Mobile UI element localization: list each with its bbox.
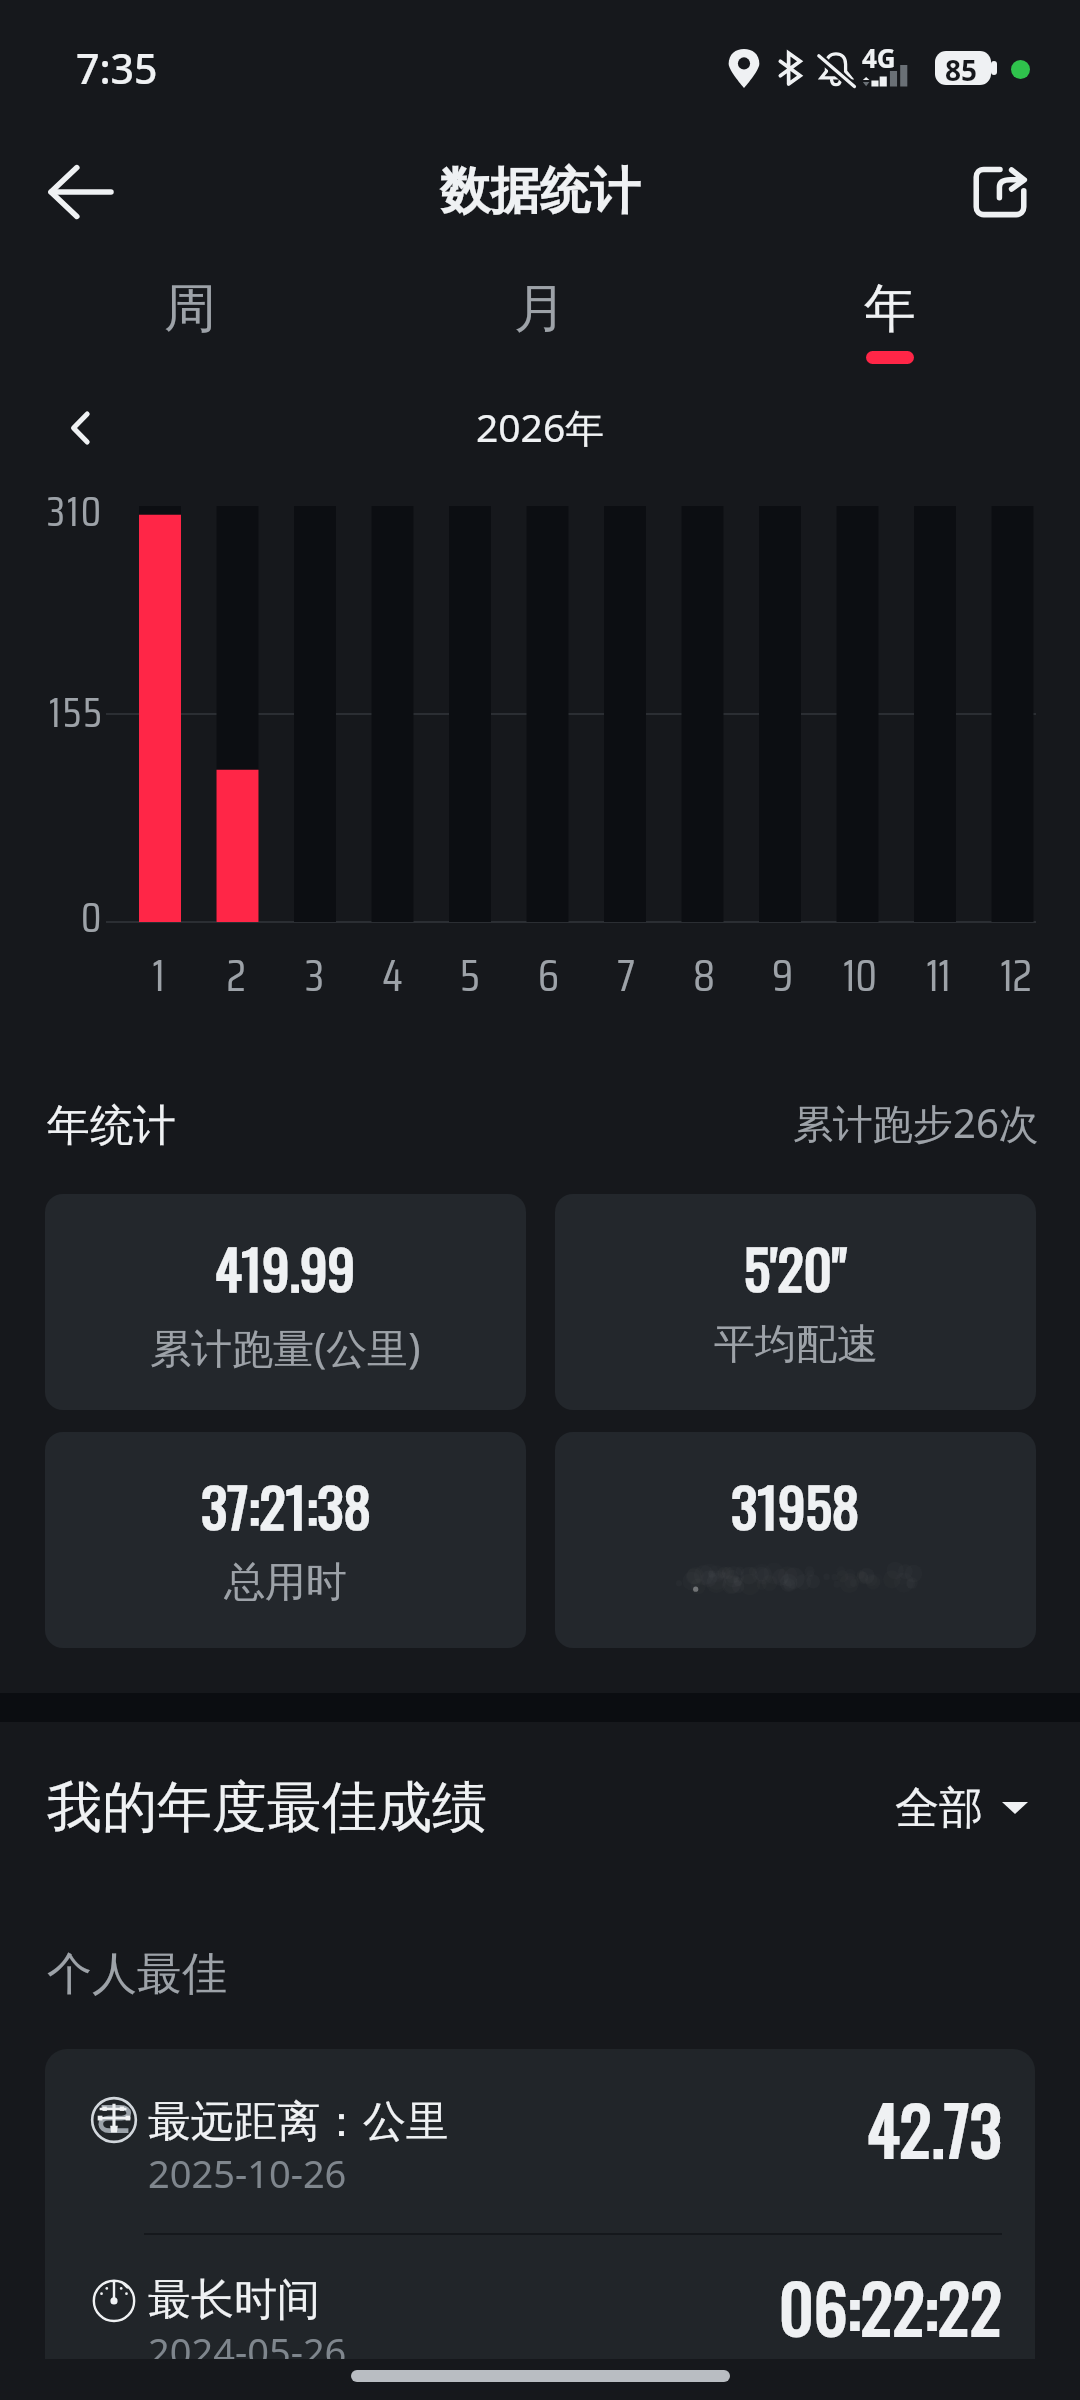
staticText: 0 bbox=[81, 884, 104, 950]
button[interactable]: 年 bbox=[774, 272, 1006, 382]
staticText: 11 bbox=[926, 941, 951, 1010]
staticText: 2 bbox=[226, 941, 246, 1010]
staticText: 5'20" bbox=[744, 1226, 847, 1308]
button[interactable]: 全部 bbox=[895, 1780, 1047, 1836]
staticText: 8 bbox=[693, 941, 715, 1010]
staticText: 31958 bbox=[731, 1464, 860, 1546]
staticText: 310 bbox=[47, 478, 104, 544]
staticText: 周 bbox=[164, 276, 216, 342]
staticText: 7 bbox=[617, 941, 635, 1010]
staticText: 月 bbox=[514, 276, 566, 342]
staticText: 37:21:38 bbox=[201, 1464, 371, 1546]
button[interactable]: 月 bbox=[424, 272, 656, 382]
button[interactable]: 最远距离：公里 bbox=[45, 2049, 1035, 2233]
staticText: 累计跑量(公里) bbox=[150, 1319, 421, 1375]
staticText: 5 bbox=[460, 941, 480, 1010]
staticText: 全部 bbox=[895, 1781, 983, 1836]
button[interactable]: Share bbox=[948, 140, 1052, 244]
staticText: 9 bbox=[772, 941, 793, 1010]
staticText: 42.73 bbox=[867, 2078, 1002, 2177]
staticText: 85 bbox=[945, 51, 978, 85]
button[interactable]: 37:21:38 bbox=[45, 1432, 526, 1648]
button[interactable]: Back bbox=[28, 140, 132, 244]
staticText: 155 bbox=[49, 679, 104, 745]
staticText: 3 bbox=[305, 941, 324, 1010]
staticText: 1 bbox=[152, 941, 165, 1010]
staticText: 419.99 bbox=[215, 1226, 356, 1308]
staticText: 年统计 bbox=[47, 1099, 176, 1153]
staticText: 06:22:22 bbox=[779, 2256, 1002, 2355]
staticText: 6 bbox=[538, 941, 559, 1010]
staticText: 平均配速 bbox=[714, 1319, 878, 1371]
staticText: 2024-05-26 bbox=[148, 2325, 347, 2359]
staticText: 12 bbox=[1000, 941, 1032, 1010]
staticText: 10 bbox=[843, 941, 877, 1010]
button[interactable]: 419.99 bbox=[45, 1194, 526, 1410]
staticText: 累计跑步26次 bbox=[793, 1095, 1039, 1150]
button[interactable]: 5'20" bbox=[555, 1194, 1036, 1410]
button[interactable]: 31958 bbox=[555, 1432, 1036, 1648]
staticText: 我的年度最佳成绩 bbox=[47, 1773, 487, 1842]
staticText: 4 bbox=[382, 941, 403, 1010]
button[interactable]: 周 bbox=[74, 272, 306, 382]
staticText: 最远距离：公里 bbox=[148, 2095, 449, 2149]
staticText: 7:35 bbox=[76, 40, 158, 96]
staticText: 最长时间 bbox=[148, 2273, 320, 2327]
staticText: 年 bbox=[864, 276, 916, 342]
button[interactable]: 最长时间 bbox=[45, 2227, 1035, 2359]
staticText: 数据统计 bbox=[440, 160, 640, 223]
staticText: 个人最佳 bbox=[47, 1946, 227, 2003]
staticText: 总用时 bbox=[224, 1557, 347, 1609]
staticText: 2025-10-26 bbox=[148, 2147, 347, 2199]
button[interactable]: Previous year bbox=[38, 386, 122, 470]
staticText: 4G bbox=[862, 40, 896, 75]
staticText: 2026年 bbox=[476, 400, 605, 453]
